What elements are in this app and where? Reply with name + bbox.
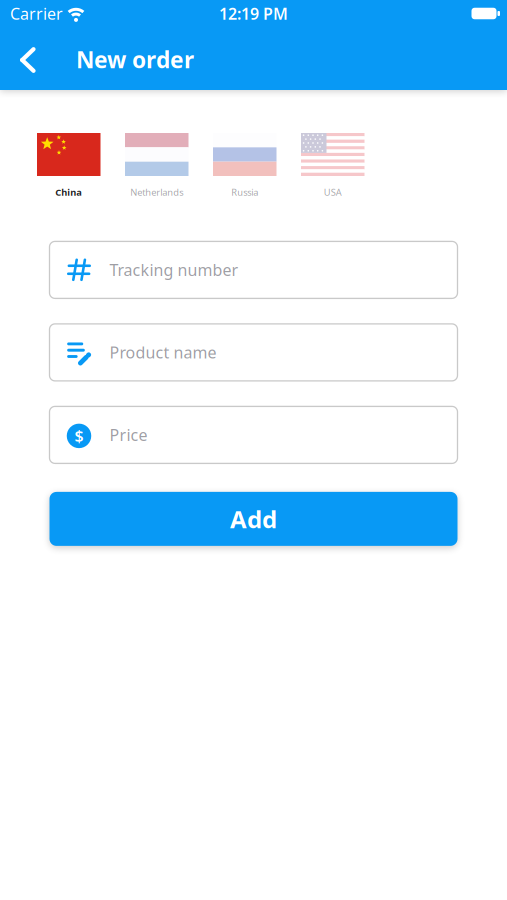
staticText: $ — [74, 425, 83, 446]
button[interactable]: USA — [301, 133, 364, 198]
staticText: Russia — [231, 186, 258, 198]
button[interactable]: Back — [0, 45, 56, 71]
button[interactable]: $ — [49, 406, 457, 463]
staticText: 12:19 PM — [219, 3, 288, 24]
staticText: New order — [76, 44, 194, 74]
staticText: Carrier — [10, 3, 63, 24]
button[interactable]: China — [37, 133, 100, 198]
staticText: Tracking number — [109, 259, 238, 280]
staticText: China — [55, 186, 82, 198]
staticText: Netherlands — [130, 186, 183, 198]
staticText: Price — [109, 424, 147, 445]
button[interactable]: Russia — [213, 133, 276, 198]
button[interactable]: Tracking number — [49, 241, 457, 298]
staticText: USA — [324, 186, 342, 198]
button[interactable]: Product name — [49, 324, 457, 381]
staticText: Add — [230, 503, 277, 535]
button[interactable]: Add — [49, 492, 457, 546]
staticText: Product name — [109, 342, 216, 363]
button[interactable]: Netherlands — [125, 133, 188, 198]
